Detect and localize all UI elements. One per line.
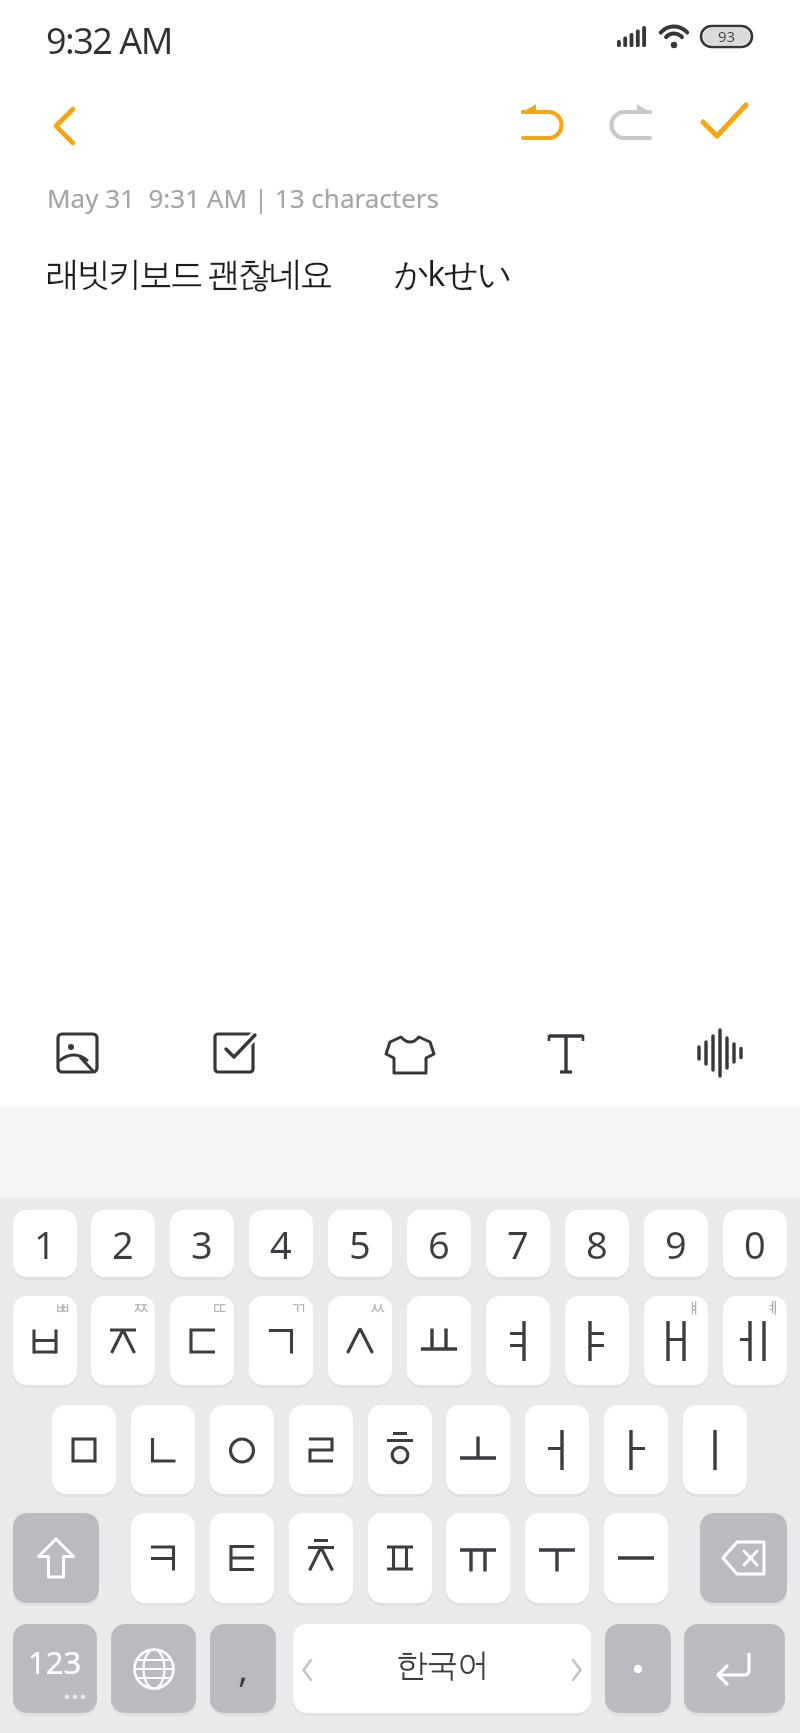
- staticText: 9:32 AM: [46, 16, 172, 60]
- button[interactable]: ㄸ: [170, 1296, 234, 1385]
- button[interactable]: [604, 1405, 668, 1494]
- button[interactable]: ,: [210, 1624, 276, 1713]
- button[interactable]: [605, 1624, 671, 1713]
- staticText: 5: [349, 1218, 371, 1270]
- staticText: 93: [718, 26, 736, 46]
- staticText: 3: [191, 1218, 213, 1270]
- staticText: ㄸ: [212, 1299, 228, 1319]
- staticText: 8: [586, 1218, 608, 1270]
- staticText: 2: [112, 1218, 134, 1270]
- button[interactable]: [536, 1023, 596, 1083]
- button[interactable]: [565, 1296, 629, 1385]
- button[interactable]: [210, 1513, 274, 1603]
- button[interactable]: ㅖ: [723, 1296, 787, 1385]
- button[interactable]: [13, 1513, 99, 1603]
- button[interactable]: 0: [723, 1210, 787, 1277]
- staticText: 1: [34, 1218, 56, 1270]
- staticText: 9: [665, 1218, 687, 1270]
- button[interactable]: [205, 1023, 265, 1083]
- button[interactable]: [48, 1023, 108, 1083]
- button[interactable]: [289, 1405, 353, 1494]
- button[interactable]: [52, 1405, 116, 1494]
- button[interactable]: [368, 1513, 432, 1603]
- staticText: ㅒ: [686, 1299, 702, 1319]
- button[interactable]: 2: [91, 1210, 155, 1277]
- button[interactable]: [380, 1023, 440, 1083]
- staticText: ㅃ: [55, 1299, 71, 1319]
- button[interactable]: [694, 94, 758, 154]
- button[interactable]: [368, 1405, 432, 1494]
- button[interactable]: 6: [407, 1210, 471, 1277]
- button[interactable]: [683, 1405, 747, 1494]
- button[interactable]: [111, 1624, 196, 1713]
- button[interactable]: 1: [13, 1210, 77, 1277]
- staticText: 7: [507, 1218, 529, 1270]
- button[interactable]: 5: [328, 1210, 392, 1277]
- button[interactable]: [446, 1513, 510, 1603]
- staticText: 6: [428, 1218, 450, 1270]
- button[interactable]: [525, 1513, 589, 1603]
- staticText: 4: [270, 1218, 292, 1270]
- button[interactable]: [604, 1513, 668, 1603]
- staticText: かkせい: [394, 250, 511, 296]
- button[interactable]: [446, 1405, 510, 1494]
- button[interactable]: [700, 1513, 787, 1603]
- button[interactable]: [512, 101, 568, 153]
- staticText: 래빗키보드 괜찮네요: [46, 250, 331, 296]
- staticText: ㄲ: [291, 1299, 307, 1319]
- button[interactable]: 3: [170, 1210, 234, 1277]
- button[interactable]: [40, 98, 90, 158]
- button[interactable]: [486, 1296, 550, 1385]
- button[interactable]: [131, 1513, 195, 1603]
- button[interactable]: 123: [13, 1624, 97, 1713]
- button[interactable]: ㅃ: [13, 1296, 77, 1385]
- button[interactable]: ㅉ: [91, 1296, 155, 1385]
- button[interactable]: 4: [249, 1210, 313, 1277]
- button[interactable]: 8: [565, 1210, 629, 1277]
- staticText: 0: [744, 1218, 766, 1270]
- button[interactable]: [690, 1023, 750, 1083]
- staticText: ㅖ: [765, 1299, 781, 1319]
- button[interactable]: 7: [486, 1210, 550, 1277]
- button[interactable]: [131, 1405, 195, 1494]
- staticText: ,: [238, 1641, 249, 1693]
- button[interactable]: [210, 1405, 274, 1494]
- button[interactable]: ㅆ: [328, 1296, 392, 1385]
- button[interactable]: ㄲ: [249, 1296, 313, 1385]
- staticText: 123: [28, 1641, 82, 1683]
- button[interactable]: [605, 101, 661, 153]
- button[interactable]: [289, 1513, 353, 1603]
- button[interactable]: ㅒ: [644, 1296, 708, 1385]
- button[interactable]: [525, 1405, 589, 1494]
- button[interactable]: 한국어: [293, 1624, 591, 1713]
- staticText: ㅆ: [370, 1299, 386, 1319]
- button[interactable]: [407, 1296, 471, 1385]
- staticText: May 31 9:31 AM | 13 characters: [47, 180, 440, 215]
- button[interactable]: 9: [644, 1210, 708, 1277]
- button[interactable]: [684, 1624, 785, 1713]
- staticText: 한국어: [396, 1645, 489, 1685]
- staticText: ㅉ: [133, 1299, 149, 1319]
